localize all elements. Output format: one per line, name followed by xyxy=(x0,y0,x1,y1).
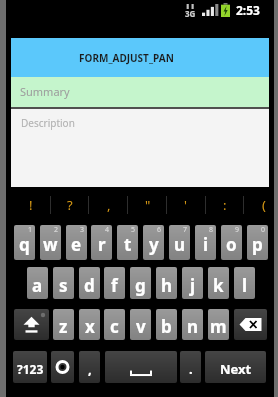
staticText: q xyxy=(19,233,30,256)
staticText: 9 xyxy=(235,225,240,235)
staticText: y xyxy=(149,233,159,256)
staticText: ' xyxy=(184,196,187,214)
staticText: 0 xyxy=(261,225,266,235)
staticText: j xyxy=(190,274,196,297)
staticText: " xyxy=(145,196,151,214)
button[interactable]: Summary xyxy=(11,77,269,107)
staticText: ! xyxy=(29,196,33,214)
staticText: f xyxy=(111,274,118,297)
button[interactable]: s xyxy=(53,267,74,299)
staticText: z xyxy=(59,315,68,338)
button[interactable]: n xyxy=(182,309,203,340)
button[interactable]: ( xyxy=(244,187,278,222)
button[interactable]: " xyxy=(128,187,167,222)
staticText: a xyxy=(32,274,43,297)
button[interactable]: Shift xyxy=(14,309,49,340)
button[interactable]: Input method settings xyxy=(51,351,74,383)
button[interactable]: j xyxy=(182,267,203,299)
staticText: 2 xyxy=(54,225,59,235)
staticText: k xyxy=(213,274,224,297)
staticText: v xyxy=(136,315,146,338)
button[interactable]: ! xyxy=(11,187,50,222)
button[interactable]: h xyxy=(156,267,177,299)
staticText: r xyxy=(98,233,106,256)
staticText: 5 xyxy=(131,225,136,235)
staticText: Summary xyxy=(20,84,70,99)
button[interactable]: c xyxy=(104,309,125,340)
button[interactable]: ' xyxy=(166,187,205,222)
button[interactable]: , xyxy=(79,351,100,383)
button[interactable]: t xyxy=(117,225,138,260)
staticText: 1 xyxy=(28,225,33,235)
staticText: s xyxy=(59,274,68,297)
staticText: c xyxy=(110,315,119,338)
staticText: p xyxy=(252,233,263,256)
staticText: 6 xyxy=(157,225,162,235)
button[interactable]: l xyxy=(234,267,255,299)
staticText: h xyxy=(161,274,173,297)
button[interactable]: e xyxy=(66,225,87,260)
button[interactable]: p xyxy=(247,225,268,260)
staticText: ? xyxy=(67,196,73,214)
button[interactable]: m xyxy=(208,309,229,340)
button[interactable]: ? xyxy=(50,187,89,222)
button[interactable]: i xyxy=(195,225,216,260)
staticText: Next xyxy=(220,360,252,378)
button[interactable]: v xyxy=(130,309,151,340)
button[interactable]: b xyxy=(156,309,177,340)
button[interactable]: x xyxy=(79,309,100,340)
staticText: 7 xyxy=(183,225,188,235)
staticText: w xyxy=(43,233,58,256)
staticText: Description xyxy=(21,116,75,130)
button[interactable]: f xyxy=(104,267,125,299)
staticText: o xyxy=(226,233,237,256)
staticText: u xyxy=(174,233,186,256)
staticText: e xyxy=(71,233,82,256)
staticText: g xyxy=(135,274,146,297)
staticText: 3G xyxy=(185,8,196,19)
button[interactable]: q xyxy=(14,225,35,260)
button[interactable]: z xyxy=(53,309,74,340)
staticText: x xyxy=(85,315,95,338)
staticText: 3 xyxy=(80,225,85,235)
button[interactable]: Next xyxy=(205,351,266,383)
staticText: : xyxy=(223,196,227,214)
button[interactable]: Description xyxy=(11,109,269,187)
button[interactable]: a xyxy=(27,267,48,299)
staticText: l xyxy=(242,274,248,297)
button[interactable]: : xyxy=(205,187,244,222)
button[interactable]: ?123 xyxy=(13,351,47,383)
staticText: t xyxy=(124,233,132,256)
button[interactable]: g xyxy=(130,267,151,299)
staticText: 8 xyxy=(209,225,214,235)
staticText: 2:53 xyxy=(236,2,260,18)
button[interactable]: w xyxy=(40,225,61,260)
staticText: 4 xyxy=(105,225,110,235)
button[interactable]: . xyxy=(180,351,201,383)
staticText: , xyxy=(88,360,92,378)
staticText: , xyxy=(107,196,111,214)
staticText: n xyxy=(187,315,199,338)
button[interactable]: , xyxy=(89,187,128,222)
staticText: ( xyxy=(262,196,266,214)
button[interactable]: Space xyxy=(105,351,177,383)
staticText: b xyxy=(161,315,172,338)
staticText: . xyxy=(189,360,193,378)
staticText: ?123 xyxy=(17,361,44,377)
button[interactable]: y xyxy=(143,225,164,260)
staticText: FORM_ADJUST_PAN xyxy=(79,51,174,65)
button[interactable]: o xyxy=(221,225,242,260)
button[interactable]: Delete xyxy=(234,309,267,340)
button[interactable]: r xyxy=(91,225,112,260)
staticText: i xyxy=(203,233,209,256)
button[interactable]: u xyxy=(169,225,190,260)
button[interactable]: k xyxy=(208,267,229,299)
button[interactable]: d xyxy=(79,267,100,299)
staticText: m xyxy=(210,315,227,338)
staticText: d xyxy=(84,274,95,297)
